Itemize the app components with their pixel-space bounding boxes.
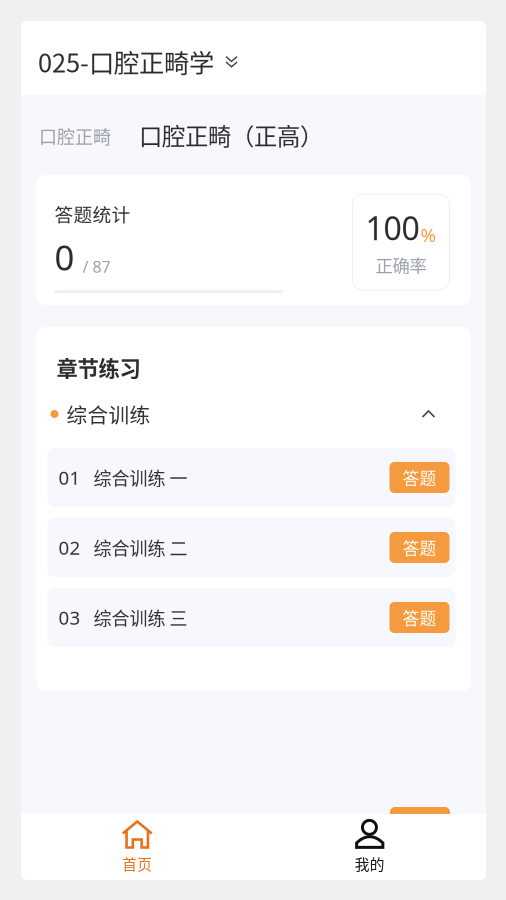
staticText: 口腔正畸（正高） (139, 118, 323, 152)
staticText: 025-口腔正畸学 (38, 43, 214, 80)
staticText: 03 (58, 605, 80, 630)
button[interactable]: 025-口腔正畸学 (21, 21, 486, 95)
button[interactable]: 首页 (21, 814, 253, 880)
button[interactable]: 综合训练 (36, 399, 470, 429)
staticText: 综合训练 (66, 399, 150, 429)
staticText: 0 (54, 234, 74, 280)
staticText: 综合训练 二 (93, 534, 187, 561)
staticText: 答题 (402, 535, 436, 559)
button[interactable]: 答题 (389, 462, 449, 493)
staticText: 01 (58, 465, 80, 490)
button[interactable]: 口腔正畸 (39, 123, 111, 149)
staticText: 综合训练 三 (93, 604, 187, 631)
staticText: 正确率 (375, 252, 426, 277)
staticText: 01 (59, 810, 81, 835)
staticText: 章节练习 (56, 352, 140, 383)
staticText: 我的 (355, 853, 385, 874)
button[interactable]: 答题 (389, 602, 449, 633)
staticText: 答题统计 (54, 200, 130, 227)
staticText: 综合训练 一 (93, 464, 187, 491)
staticText: 02 (58, 535, 80, 560)
staticText: 综合训练 一 (94, 809, 188, 836)
staticText: 答题 (402, 605, 436, 629)
staticText: 首页 (122, 853, 152, 874)
button[interactable]: 答题 (389, 532, 449, 563)
staticText: 口腔正畸 (39, 123, 111, 149)
button[interactable]: 口腔正畸（正高） (139, 121, 323, 149)
staticText: / 87 (82, 256, 110, 277)
staticText: 答题 (402, 465, 436, 489)
staticText: 答题 (403, 810, 437, 834)
staticText: % (420, 222, 436, 247)
button[interactable]: 我的 (253, 814, 486, 880)
staticText: 100 (365, 207, 419, 249)
